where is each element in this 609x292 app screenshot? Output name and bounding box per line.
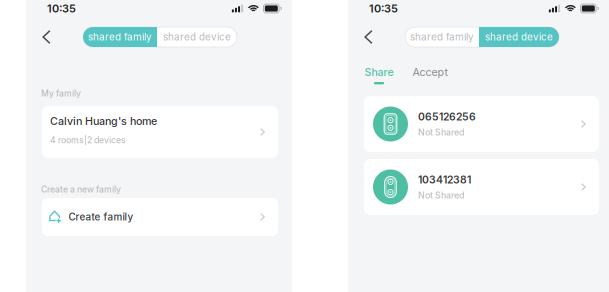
button[interactable]: Calvin Huang's home: [42, 106, 278, 158]
button[interactable]: shared device: [157, 27, 237, 47]
staticText: Accept: [412, 66, 447, 78]
staticText: Calvin Huang's home: [50, 115, 157, 127]
staticText: 4 rooms|2 devices: [50, 135, 126, 145]
button[interactable]: shared family: [83, 27, 157, 47]
button[interactable]: shared family: [405, 27, 479, 47]
staticText: 065126256: [418, 110, 476, 123]
button[interactable]: 103412381: [364, 159, 599, 215]
staticText: Create family: [68, 211, 133, 223]
staticText: 10:35: [369, 2, 398, 15]
button[interactable]: Back: [357, 27, 379, 47]
staticText: Create a new family: [41, 184, 121, 194]
staticText: Not Shared: [418, 127, 464, 138]
button[interactable]: Accept: [403, 66, 457, 84]
button[interactable]: Create family: [42, 198, 278, 236]
staticText: shared family: [410, 31, 474, 43]
staticText: 10:35: [47, 2, 76, 15]
staticText: shared device: [163, 31, 231, 43]
staticText: My family: [41, 88, 81, 98]
staticText: shared family: [88, 31, 152, 43]
button[interactable]: Share: [355, 66, 403, 84]
staticText: 103412381: [418, 173, 471, 186]
staticText: Not Shared: [418, 190, 464, 201]
staticText: Share: [364, 66, 393, 78]
button[interactable]: shared device: [479, 27, 559, 47]
button[interactable]: 065126256: [364, 96, 599, 152]
staticText: shared device: [485, 31, 553, 43]
button[interactable]: Back: [35, 27, 57, 47]
